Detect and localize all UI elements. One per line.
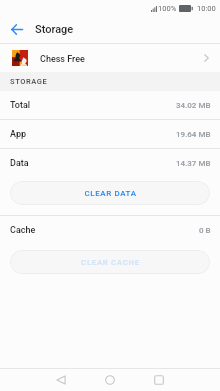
button[interactable]: CLEAR CACHE <box>10 250 210 274</box>
button[interactable]: CLEAR DATA <box>10 181 210 205</box>
button[interactable]: Back <box>50 369 72 391</box>
staticText: App <box>10 129 27 140</box>
button[interactable]: Navigate up <box>6 18 28 40</box>
button[interactable]: Home <box>99 369 121 391</box>
staticText: CLEAR DATA <box>84 189 137 198</box>
staticText: CLEAR CACHE <box>81 258 140 267</box>
staticText: Storage <box>35 23 74 36</box>
staticText: 100% <box>158 4 177 13</box>
button[interactable]: Recent apps <box>148 369 170 391</box>
staticText: STORAGE <box>10 77 48 86</box>
staticText: Total <box>10 100 31 111</box>
staticText: 19.64 MB <box>176 130 211 139</box>
staticText: 14.37 MB <box>176 159 211 168</box>
staticText: 10:00 <box>197 4 216 13</box>
staticText: 34.02 MB <box>176 101 211 110</box>
button[interactable]: Chess Free <box>0 44 220 72</box>
staticText: Chess Free <box>40 54 85 65</box>
staticText: 0 B <box>199 226 211 235</box>
staticText: Data <box>10 158 29 169</box>
staticText: Cache <box>10 225 36 236</box>
